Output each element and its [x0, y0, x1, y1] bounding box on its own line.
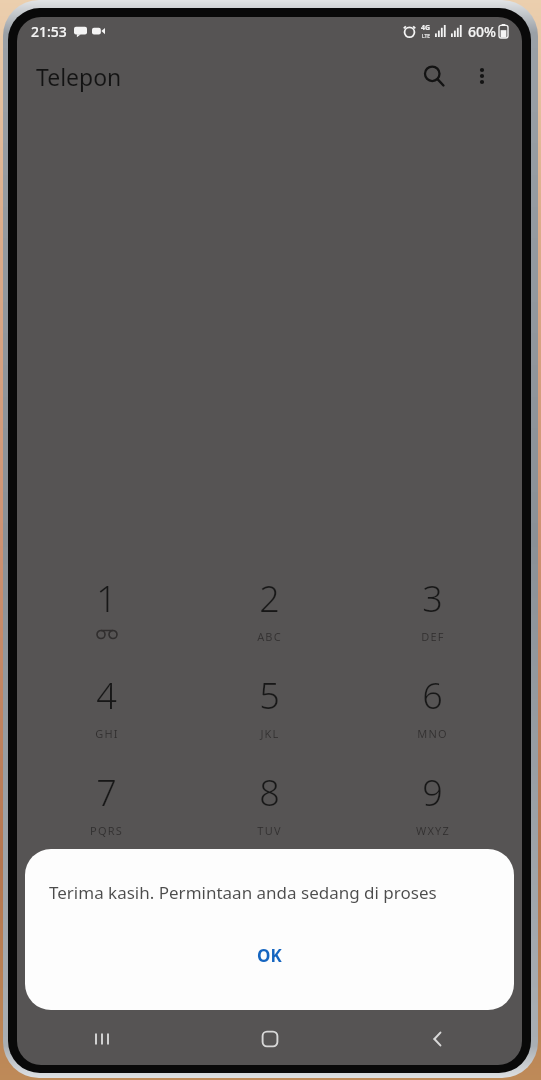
staticText: 7: [96, 768, 117, 817]
button[interactable]: Home: [186, 1013, 354, 1065]
staticText: ABC: [257, 629, 282, 644]
staticText: JKL: [260, 726, 280, 741]
staticText: ✱: [93, 866, 121, 904]
button[interactable]: 2: [188, 565, 351, 662]
button[interactable]: 9: [351, 759, 514, 856]
staticText: 4G: [421, 23, 431, 33]
staticText: WXYZ: [416, 823, 450, 838]
button[interactable]: 1: [25, 565, 188, 662]
staticText: 2: [259, 574, 280, 623]
button[interactable]: Back: [354, 1013, 522, 1065]
button[interactable]: Recents: [17, 1013, 186, 1065]
button[interactable]: 0: [188, 856, 351, 953]
staticText: 1: [96, 574, 117, 623]
staticText: 0: [259, 865, 280, 914]
staticText: 9: [422, 768, 443, 817]
staticText: 5: [259, 671, 280, 720]
button[interactable]: 3: [351, 565, 514, 662]
staticText: GHI: [95, 726, 119, 741]
staticText: OK: [257, 944, 282, 967]
staticText: DEF: [421, 629, 445, 644]
button[interactable]: 8: [188, 759, 351, 856]
button[interactable]: #: [351, 856, 514, 953]
button[interactable]: 7: [25, 759, 188, 856]
staticText: #: [422, 866, 444, 911]
staticText: PQRS: [90, 823, 123, 838]
button[interactable]: OK: [25, 932, 514, 978]
button[interactable]: 6: [351, 662, 514, 759]
staticText: LTE: [422, 33, 431, 40]
staticText: 21:53: [31, 22, 67, 41]
staticText: 3: [422, 574, 443, 623]
staticText: Telepon: [36, 61, 122, 92]
staticText: 8: [259, 768, 280, 817]
button[interactable]: 5: [188, 662, 351, 759]
staticText: 4: [96, 671, 117, 720]
staticText: 6: [422, 671, 443, 720]
button[interactable]: Search: [412, 54, 456, 98]
staticText: Terima kasih. Permintaan anda sedang di …: [49, 881, 437, 904]
staticText: MNO: [417, 726, 448, 741]
button[interactable]: More options: [460, 54, 504, 98]
button[interactable]: ✱: [25, 856, 188, 953]
button[interactable]: 4: [25, 662, 188, 759]
staticText: 60%: [468, 22, 496, 41]
staticText: TUV: [257, 823, 282, 838]
